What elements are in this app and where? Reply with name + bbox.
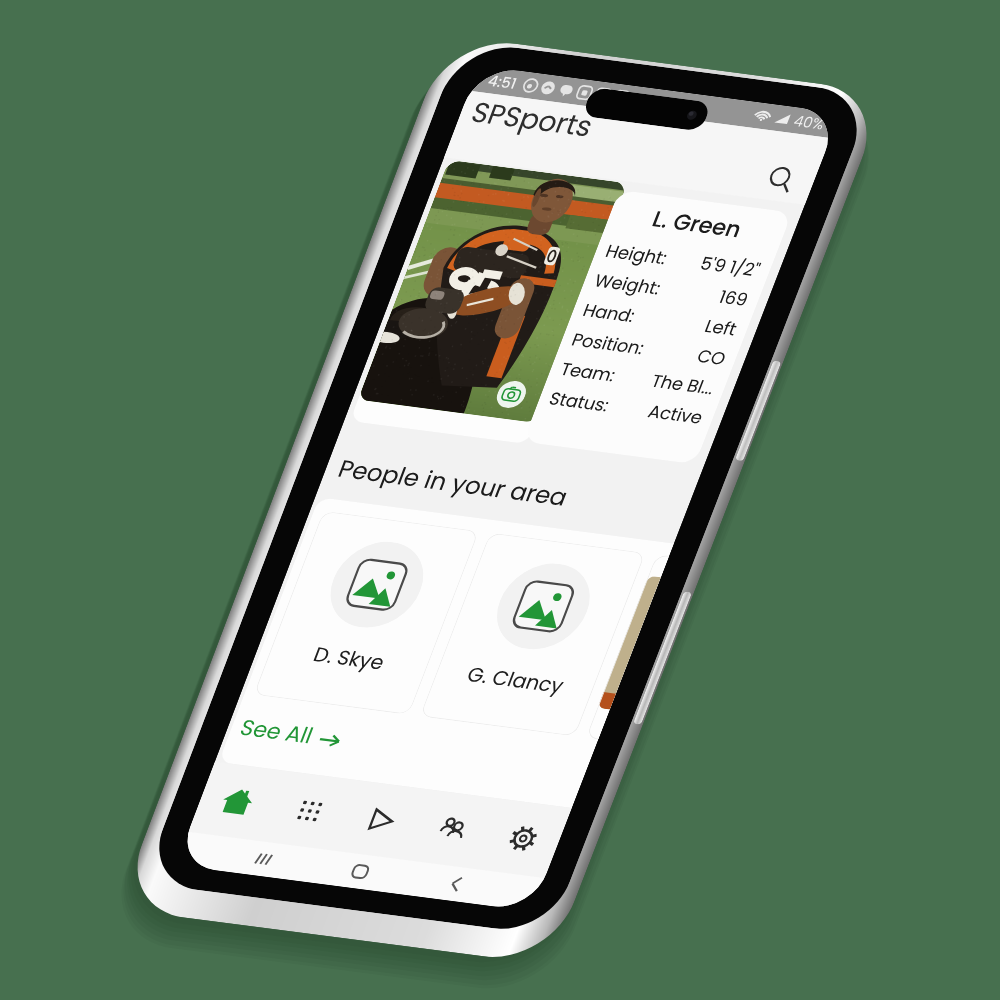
staticText: G. Clancy (463, 660, 568, 700)
staticText: Status: (545, 386, 613, 418)
staticText: Active (644, 399, 707, 430)
button[interactable]: Search (755, 158, 807, 201)
staticText: See All (235, 712, 318, 751)
button[interactable]: G. Clancy (420, 533, 646, 736)
staticText: Left (701, 314, 741, 342)
button[interactable] (586, 554, 669, 739)
staticText: Weight: (590, 268, 664, 301)
button[interactable]: Play (331, 780, 429, 860)
staticText: Hand: (579, 298, 639, 328)
staticText: D. Skye (309, 640, 389, 677)
button[interactable]: Settings (474, 799, 572, 878)
staticText: 169 (715, 284, 753, 312)
staticText: The Bl... (647, 368, 718, 401)
staticText: CO (693, 344, 730, 371)
button[interactable]: See All (228, 706, 354, 761)
button[interactable]: Home (188, 762, 287, 841)
button[interactable]: D. Skye (253, 511, 479, 715)
button[interactable]: Home (340, 856, 380, 887)
staticText: People in your area (333, 452, 573, 514)
button[interactable]: Recents (244, 843, 284, 875)
staticText: L. Green (614, 199, 779, 250)
staticText: 4:51 (485, 70, 521, 94)
staticText: SPSports (465, 93, 598, 146)
staticText: Team: (557, 357, 619, 388)
button[interactable]: Back (437, 868, 476, 900)
button[interactable]: Apps (260, 771, 358, 850)
staticText: 40% (791, 110, 828, 134)
staticText: 5'9 1/2" (696, 251, 764, 283)
staticText: Position: (568, 327, 648, 361)
staticText: Height: (602, 239, 671, 271)
button[interactable]: People (403, 789, 501, 869)
button[interactable]: Change photo (493, 379, 530, 410)
